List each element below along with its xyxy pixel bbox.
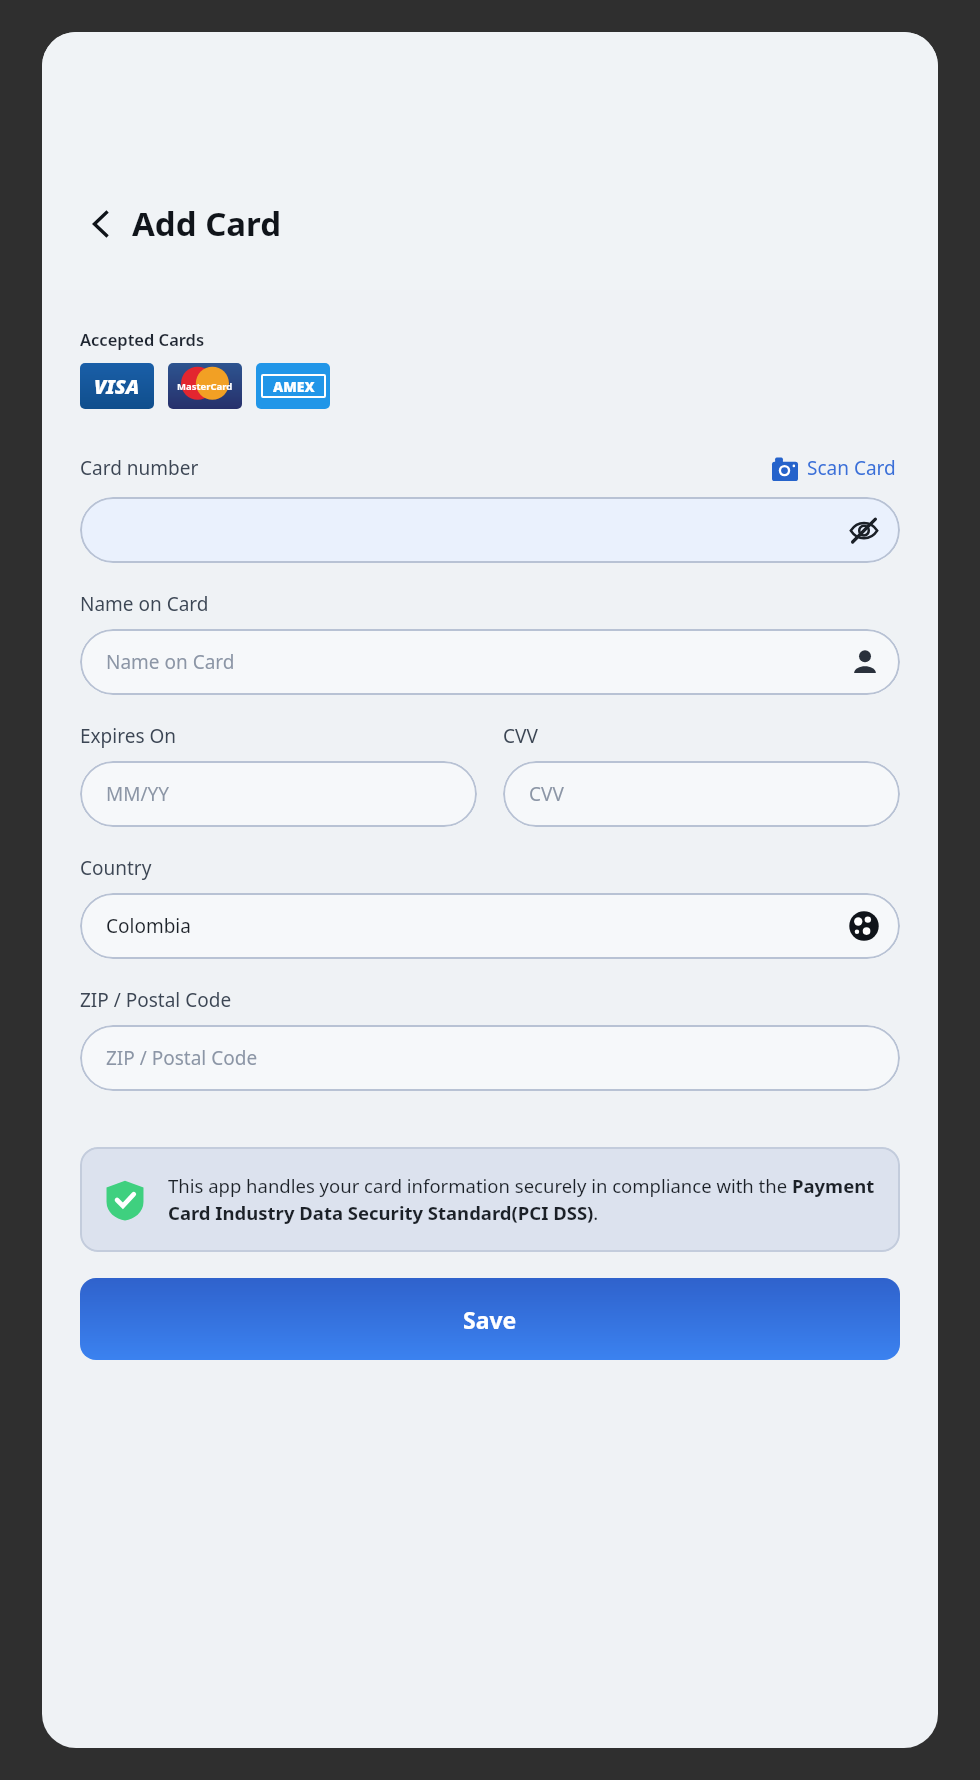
button[interactable]: ZIP / Postal Code xyxy=(80,1025,900,1091)
staticText: Accepted Cards xyxy=(80,328,205,350)
button[interactable]: Back xyxy=(80,195,286,252)
staticText: VISA xyxy=(94,373,140,400)
staticText: Card number xyxy=(80,455,199,481)
button[interactable]: MM/YY xyxy=(80,761,477,827)
staticText: Save xyxy=(463,1304,517,1335)
button[interactable]: This app handles your card information s… xyxy=(80,1147,900,1252)
other: Back xyxy=(84,207,118,241)
button[interactable]: Scan Card xyxy=(768,451,900,485)
staticText: Add Card xyxy=(132,201,282,246)
staticText: This app handles your card information s… xyxy=(168,1173,876,1226)
staticText: MasterCard xyxy=(177,380,233,393)
staticText: CVV xyxy=(503,723,538,749)
staticText: MM/YY xyxy=(106,781,170,807)
staticText: Scan Card xyxy=(807,455,896,481)
button[interactable]: Colombia xyxy=(80,893,900,959)
button[interactable]: Name on Card xyxy=(80,629,900,695)
staticText: Name on Card xyxy=(106,649,235,675)
staticText: ZIP / Postal Code xyxy=(106,1045,258,1071)
button[interactable]: CVV xyxy=(503,761,900,827)
staticText: CVV xyxy=(529,781,564,807)
staticText: AMEX xyxy=(273,377,315,396)
button[interactable]: Select country xyxy=(844,906,884,946)
button[interactable]: Hide card number xyxy=(844,510,884,550)
staticText: Name on Card xyxy=(80,591,209,617)
staticText: Country xyxy=(80,855,152,881)
staticText: ZIP / Postal Code xyxy=(80,987,232,1013)
staticText: Expires On xyxy=(80,723,177,749)
staticText: Colombia xyxy=(106,913,191,939)
button[interactable]: Hide card number xyxy=(80,497,900,563)
button[interactable]: Save xyxy=(80,1278,900,1360)
